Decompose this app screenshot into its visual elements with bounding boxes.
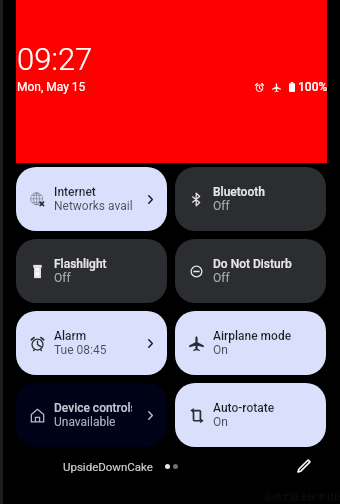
staticText: Tue 08:45 — [54, 343, 107, 357]
staticText: Off — [54, 271, 71, 285]
staticText: 09:27 — [17, 41, 93, 77]
staticText: 100% — [298, 80, 328, 94]
staticText: Bluetooth — [213, 185, 265, 199]
staticText: Unavailable — [54, 415, 116, 429]
button[interactable]: Auto-rotate — [175, 383, 326, 447]
staticText: Alarm — [54, 329, 87, 343]
button[interactable]: Airplane mode — [175, 311, 326, 375]
button[interactable]: Do Not Disturb — [175, 239, 326, 303]
button[interactable]: Alarm — [16, 311, 167, 375]
staticText: Mon, May 15 — [17, 80, 86, 94]
staticText: Device controls — [54, 401, 132, 415]
button[interactable]: Flashlight — [16, 239, 167, 303]
button[interactable]: Bluetooth — [175, 167, 326, 231]
staticText: Internet — [54, 185, 96, 199]
staticText: Flashlight — [54, 257, 107, 271]
staticText: Do Not Disturb — [213, 257, 292, 271]
staticText: On — [213, 415, 228, 429]
staticText: UpsideDownCake — [63, 460, 153, 473]
staticText: Auto-rotate — [213, 401, 275, 415]
staticText: Networks available — [54, 199, 132, 213]
button[interactable]: Device controls — [16, 383, 167, 447]
button[interactable]: Edit tiles — [294, 456, 314, 476]
staticText: Off — [213, 271, 230, 285]
button[interactable]: UpsideDownCake — [63, 460, 178, 473]
staticText: @稀土掘金技术社区 — [264, 491, 340, 502]
staticText: Airplane mode — [213, 329, 292, 343]
staticText: On — [213, 343, 228, 357]
staticText: Off — [213, 199, 230, 213]
button[interactable]: Internet — [16, 167, 167, 231]
